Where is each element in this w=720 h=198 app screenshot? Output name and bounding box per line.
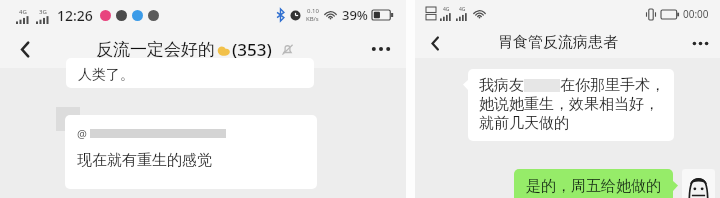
button[interactable]: @ — [65, 115, 317, 189]
staticText: 她说她重生，效果相当好， — [479, 95, 659, 114]
staticText: (353) — [232, 38, 272, 61]
staticText: KB/s — [306, 15, 319, 23]
staticText: 00:00 — [683, 7, 709, 21]
staticText: 胃食管反流病患者 — [498, 33, 618, 52]
staticText: 4G — [19, 8, 27, 16]
button[interactable]: Avatar — [682, 169, 715, 198]
staticText: @ — [77, 126, 87, 141]
staticText: 现在就有重生的感觉 — [77, 151, 212, 170]
button[interactable]: More options — [364, 32, 398, 66]
button[interactable]: 我病友 — [468, 69, 674, 141]
staticText: 12:26 — [57, 6, 93, 25]
staticText: 人类了。 — [78, 66, 134, 84]
button[interactable]: More options — [685, 28, 715, 58]
button[interactable]: 人类了。 — [66, 58, 314, 88]
button[interactable]: Back — [8, 32, 42, 66]
staticText: 0.10 — [307, 7, 319, 15]
staticText: 4G — [459, 6, 466, 13]
staticText: 反流一定会好的 — [96, 39, 215, 60]
staticText: 我病友 — [479, 76, 524, 95]
button[interactable]: Back — [420, 28, 450, 58]
staticText: 39% — [342, 6, 368, 24]
staticText: 在你那里手术， — [560, 76, 665, 95]
staticText: 就前几天做的 — [479, 114, 569, 133]
button[interactable]: 是的，周五给她做的 — [514, 169, 673, 198]
staticText: 4G — [443, 6, 450, 13]
staticText: 是的，周五给她做的 — [526, 177, 661, 196]
staticText: 3G — [39, 8, 47, 16]
